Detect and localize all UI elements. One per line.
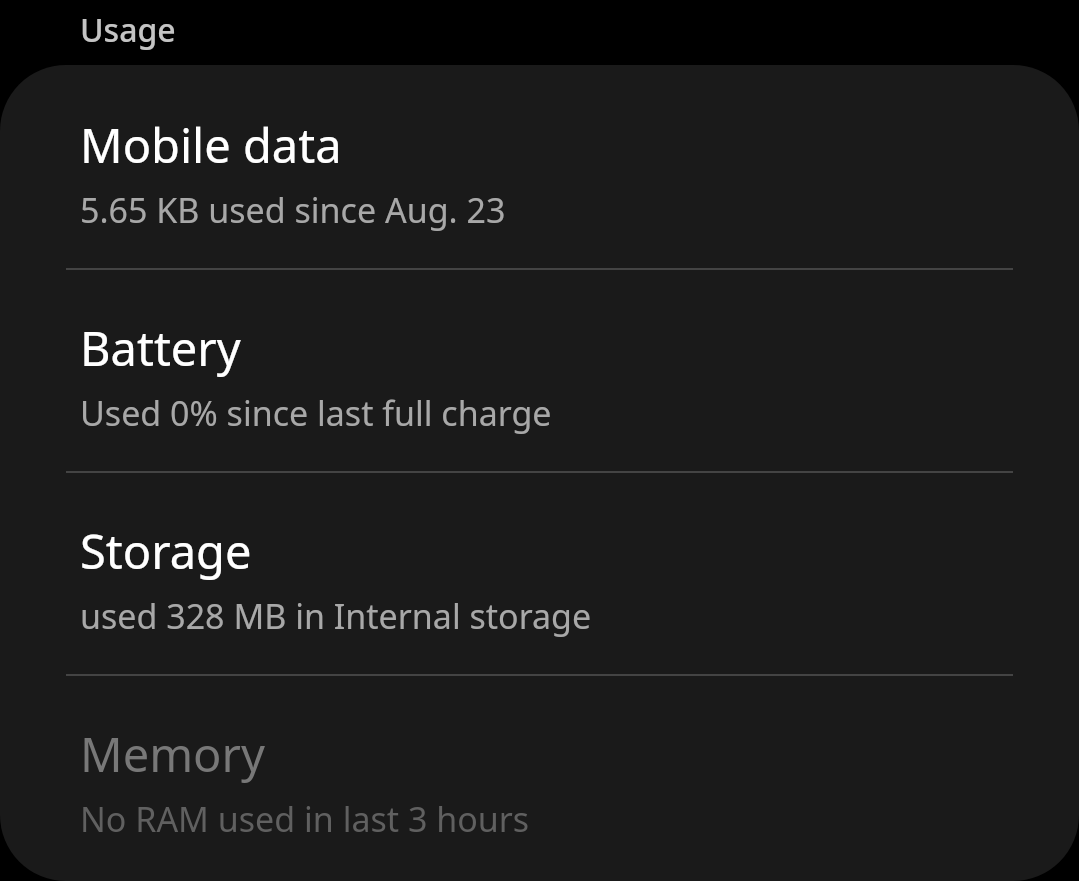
staticText: Mobile data xyxy=(80,113,342,177)
staticText: Storage xyxy=(80,519,252,583)
staticText: used 328 MB in Internal storage xyxy=(80,593,592,639)
staticText: Used 0% since last full charge xyxy=(80,390,552,436)
button[interactable]: Storage xyxy=(0,473,1079,674)
button[interactable]: Mobile data xyxy=(0,65,1079,268)
staticText: Memory xyxy=(80,722,265,786)
staticText: 5.65 KB used since Aug. 23 xyxy=(80,187,506,233)
staticText: Usage xyxy=(80,8,176,52)
button[interactable]: Battery xyxy=(0,270,1079,471)
staticText: No RAM used in last 3 hours xyxy=(80,796,530,842)
button[interactable]: Memory xyxy=(0,676,1079,877)
staticText: Battery xyxy=(80,316,241,380)
